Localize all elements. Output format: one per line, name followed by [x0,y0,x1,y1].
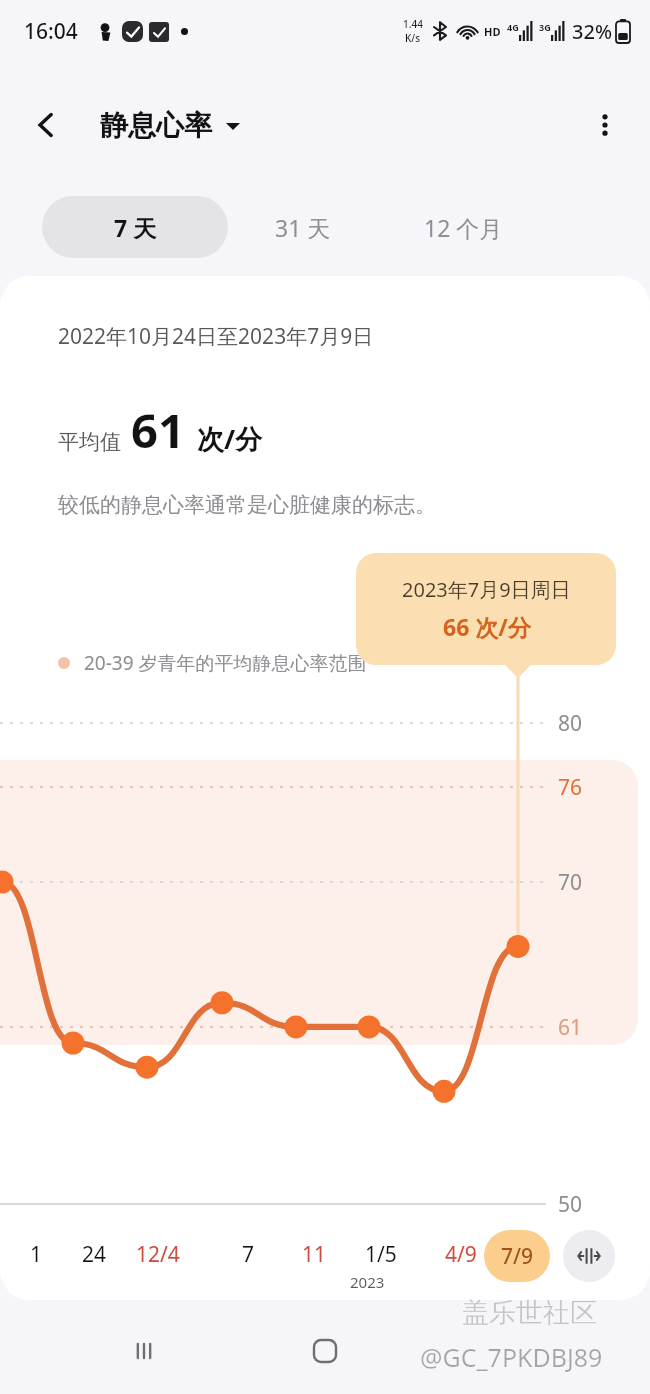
staticText: 3G [539,21,551,33]
staticText: 12 个月 [424,212,503,243]
button[interactable]: 静息心率 [94,104,246,147]
staticText: 12/4 [136,1240,180,1269]
staticText: 66 次/分 [443,611,531,642]
staticText: 4G [507,21,519,33]
button[interactable]: 31 天 [228,196,378,258]
button[interactable]: Compare range [563,1230,615,1282]
staticText: 2023年7月9日周日 [402,576,571,603]
staticText: 11 [302,1240,327,1269]
button[interactable]: 4/9 [425,1228,497,1280]
staticText: 50 [558,1190,583,1219]
button[interactable]: Back [18,97,74,153]
staticText: 80 [558,709,583,738]
staticText: 较低的静息心率通常是心脏健康的标志。 [58,492,436,518]
button[interactable]: Home [297,1323,353,1379]
staticText: 盖乐世社区 [462,1296,597,1330]
staticText: @GC_7PKDBJ89 [420,1340,603,1374]
button[interactable]: Recents [118,1325,170,1377]
staticText: 76 [558,773,583,802]
button[interactable]: 12 个月 [378,196,548,258]
button[interactable]: More options [578,98,632,152]
staticText: K/s [405,31,421,45]
staticText: 7 [242,1240,255,1269]
staticText: 70 [558,868,583,897]
staticText: 1.44 [403,17,423,31]
staticText: 次/分 [197,420,263,457]
button[interactable]: 12/4 [122,1228,194,1280]
staticText: 61 [131,398,185,462]
staticText: 61 [558,1013,583,1042]
staticText: 7 天 [114,212,157,243]
button[interactable]: 7 天 [42,196,228,258]
staticText: 2023 [350,1272,385,1292]
button[interactable]: 1/5 [345,1228,417,1280]
staticText: 31 天 [275,212,331,243]
button[interactable]: 11 [278,1228,350,1280]
button[interactable]: 1 [0,1228,72,1280]
staticText: 静息心率 [100,108,212,143]
staticText: 20-39 岁青年的平均静息心率范围 [84,650,367,676]
staticText: HD [484,24,501,39]
staticText: 1/5 [365,1240,397,1269]
staticText: 24 [82,1240,107,1269]
button[interactable]: Back [480,1325,532,1377]
button[interactable]: 24 [58,1228,130,1280]
staticText: 32% [572,18,612,45]
button[interactable]: 7 [212,1228,284,1280]
button[interactable]: 2023年7月9日周日 [356,553,616,665]
staticText: 2022年10月24日至2023年7月9日 [58,322,374,351]
staticText: 7/9 [501,1242,534,1271]
staticText: 4/9 [445,1240,477,1269]
staticText: 16:04 [24,17,78,46]
button[interactable]: 7/9 [484,1230,550,1282]
staticText: 平均值 [58,429,121,455]
staticText: 1 [30,1240,43,1269]
